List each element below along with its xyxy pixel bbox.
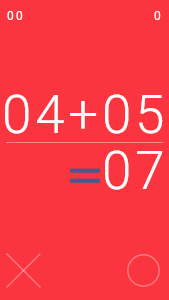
staticText: 00 <box>7 9 25 23</box>
staticText: 0 <box>154 9 161 23</box>
button[interactable]: 0 <box>151 6 164 26</box>
staticText: 07 <box>102 140 169 202</box>
button[interactable]: 00 <box>4 6 28 26</box>
button[interactable]: Wrong <box>0 243 51 298</box>
staticText: 04+05 <box>2 84 169 146</box>
button[interactable]: Right <box>116 243 169 298</box>
